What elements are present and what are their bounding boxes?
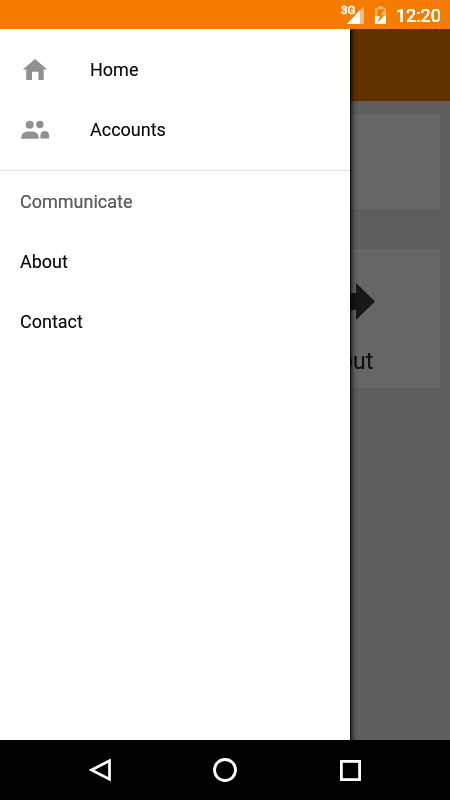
button[interactable]: Contact (0, 292, 350, 352)
staticText: 12:20 (396, 5, 441, 26)
staticText: Contact (20, 311, 83, 332)
button[interactable]: Home (0, 41, 350, 101)
staticText: Contact (20, 311, 83, 332)
staticText: Home (90, 59, 139, 80)
staticText: Accounts (90, 119, 166, 140)
staticText: Communicate (20, 191, 133, 212)
staticText: About (20, 251, 68, 272)
staticText: 3G (341, 3, 356, 16)
staticText: About (312, 348, 374, 375)
staticText: Home (90, 59, 139, 80)
button[interactable]: About (0, 232, 350, 292)
staticText: Communicate (20, 191, 133, 212)
staticText: About (312, 348, 374, 375)
button[interactable]: Accounts (0, 101, 350, 161)
staticText: 12:20 (396, 5, 441, 26)
staticText: About (20, 251, 68, 272)
button[interactable]: Communicate (0, 172, 350, 232)
button[interactable]: Recents (326, 746, 374, 794)
button[interactable]: Home (201, 746, 249, 794)
staticText: Accounts (90, 119, 166, 140)
button[interactable]: Back (76, 746, 124, 794)
